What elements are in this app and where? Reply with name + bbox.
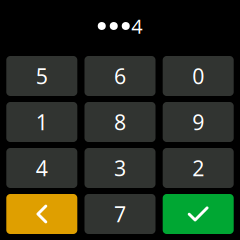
button[interactable]: 8: [84, 102, 155, 142]
button[interactable]: 7: [84, 194, 155, 234]
staticText: 1: [36, 108, 48, 136]
button[interactable]: 2: [163, 148, 234, 188]
button[interactable]: 4: [6, 148, 77, 188]
staticText: 9: [192, 108, 204, 136]
button[interactable]: 6: [84, 56, 155, 96]
button[interactable]: 1: [6, 102, 77, 142]
staticText: 8: [114, 108, 126, 136]
button[interactable]: 3: [84, 148, 155, 188]
staticText: 2: [192, 154, 204, 182]
button[interactable]: 5: [6, 56, 77, 96]
staticText: 4: [36, 154, 48, 182]
staticText: 5: [36, 62, 48, 90]
staticText: 3: [114, 154, 126, 182]
staticText: 6: [114, 62, 126, 90]
button[interactable]: 9: [163, 102, 234, 142]
button[interactable]: 0: [163, 56, 234, 96]
staticText: 7: [114, 200, 126, 228]
staticText: 0: [192, 62, 204, 90]
staticText: 4: [131, 13, 142, 39]
button[interactable]: Delete: [6, 194, 77, 234]
button[interactable]: Confirm: [163, 194, 234, 234]
